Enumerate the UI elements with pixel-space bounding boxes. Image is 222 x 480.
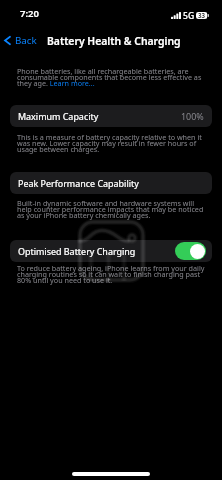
staticText: 33 (198, 11, 206, 19)
staticText: 100% (181, 110, 204, 122)
staticText: Battery Health & Charging (47, 34, 181, 48)
button[interactable]: Peak Performance Capability (10, 172, 212, 194)
staticText: Phone batteries, like all rechargeable b… (17, 66, 210, 88)
staticText: Maximum Capacity (18, 110, 99, 122)
staticText: 7:20 (20, 7, 39, 20)
staticText: To reduce battery ageing, iPhone learns … (17, 263, 210, 285)
button[interactable]: Optimised Battery Charging (10, 240, 212, 262)
button[interactable]: Optimised Battery Charging toggle (175, 242, 206, 260)
staticText: This is a measure of battery capacity re… (17, 132, 210, 154)
staticText: Peak Performance Capability (18, 177, 139, 189)
staticText: Built-in dynamic software and hardware s… (17, 198, 210, 220)
button[interactable]: Maximum Capacity (10, 105, 212, 127)
staticText: 5G (183, 10, 195, 22)
staticText: Optimised Battery Charging (18, 245, 136, 257)
staticText: Back (15, 34, 37, 47)
button[interactable]: Back (0, 34, 43, 47)
